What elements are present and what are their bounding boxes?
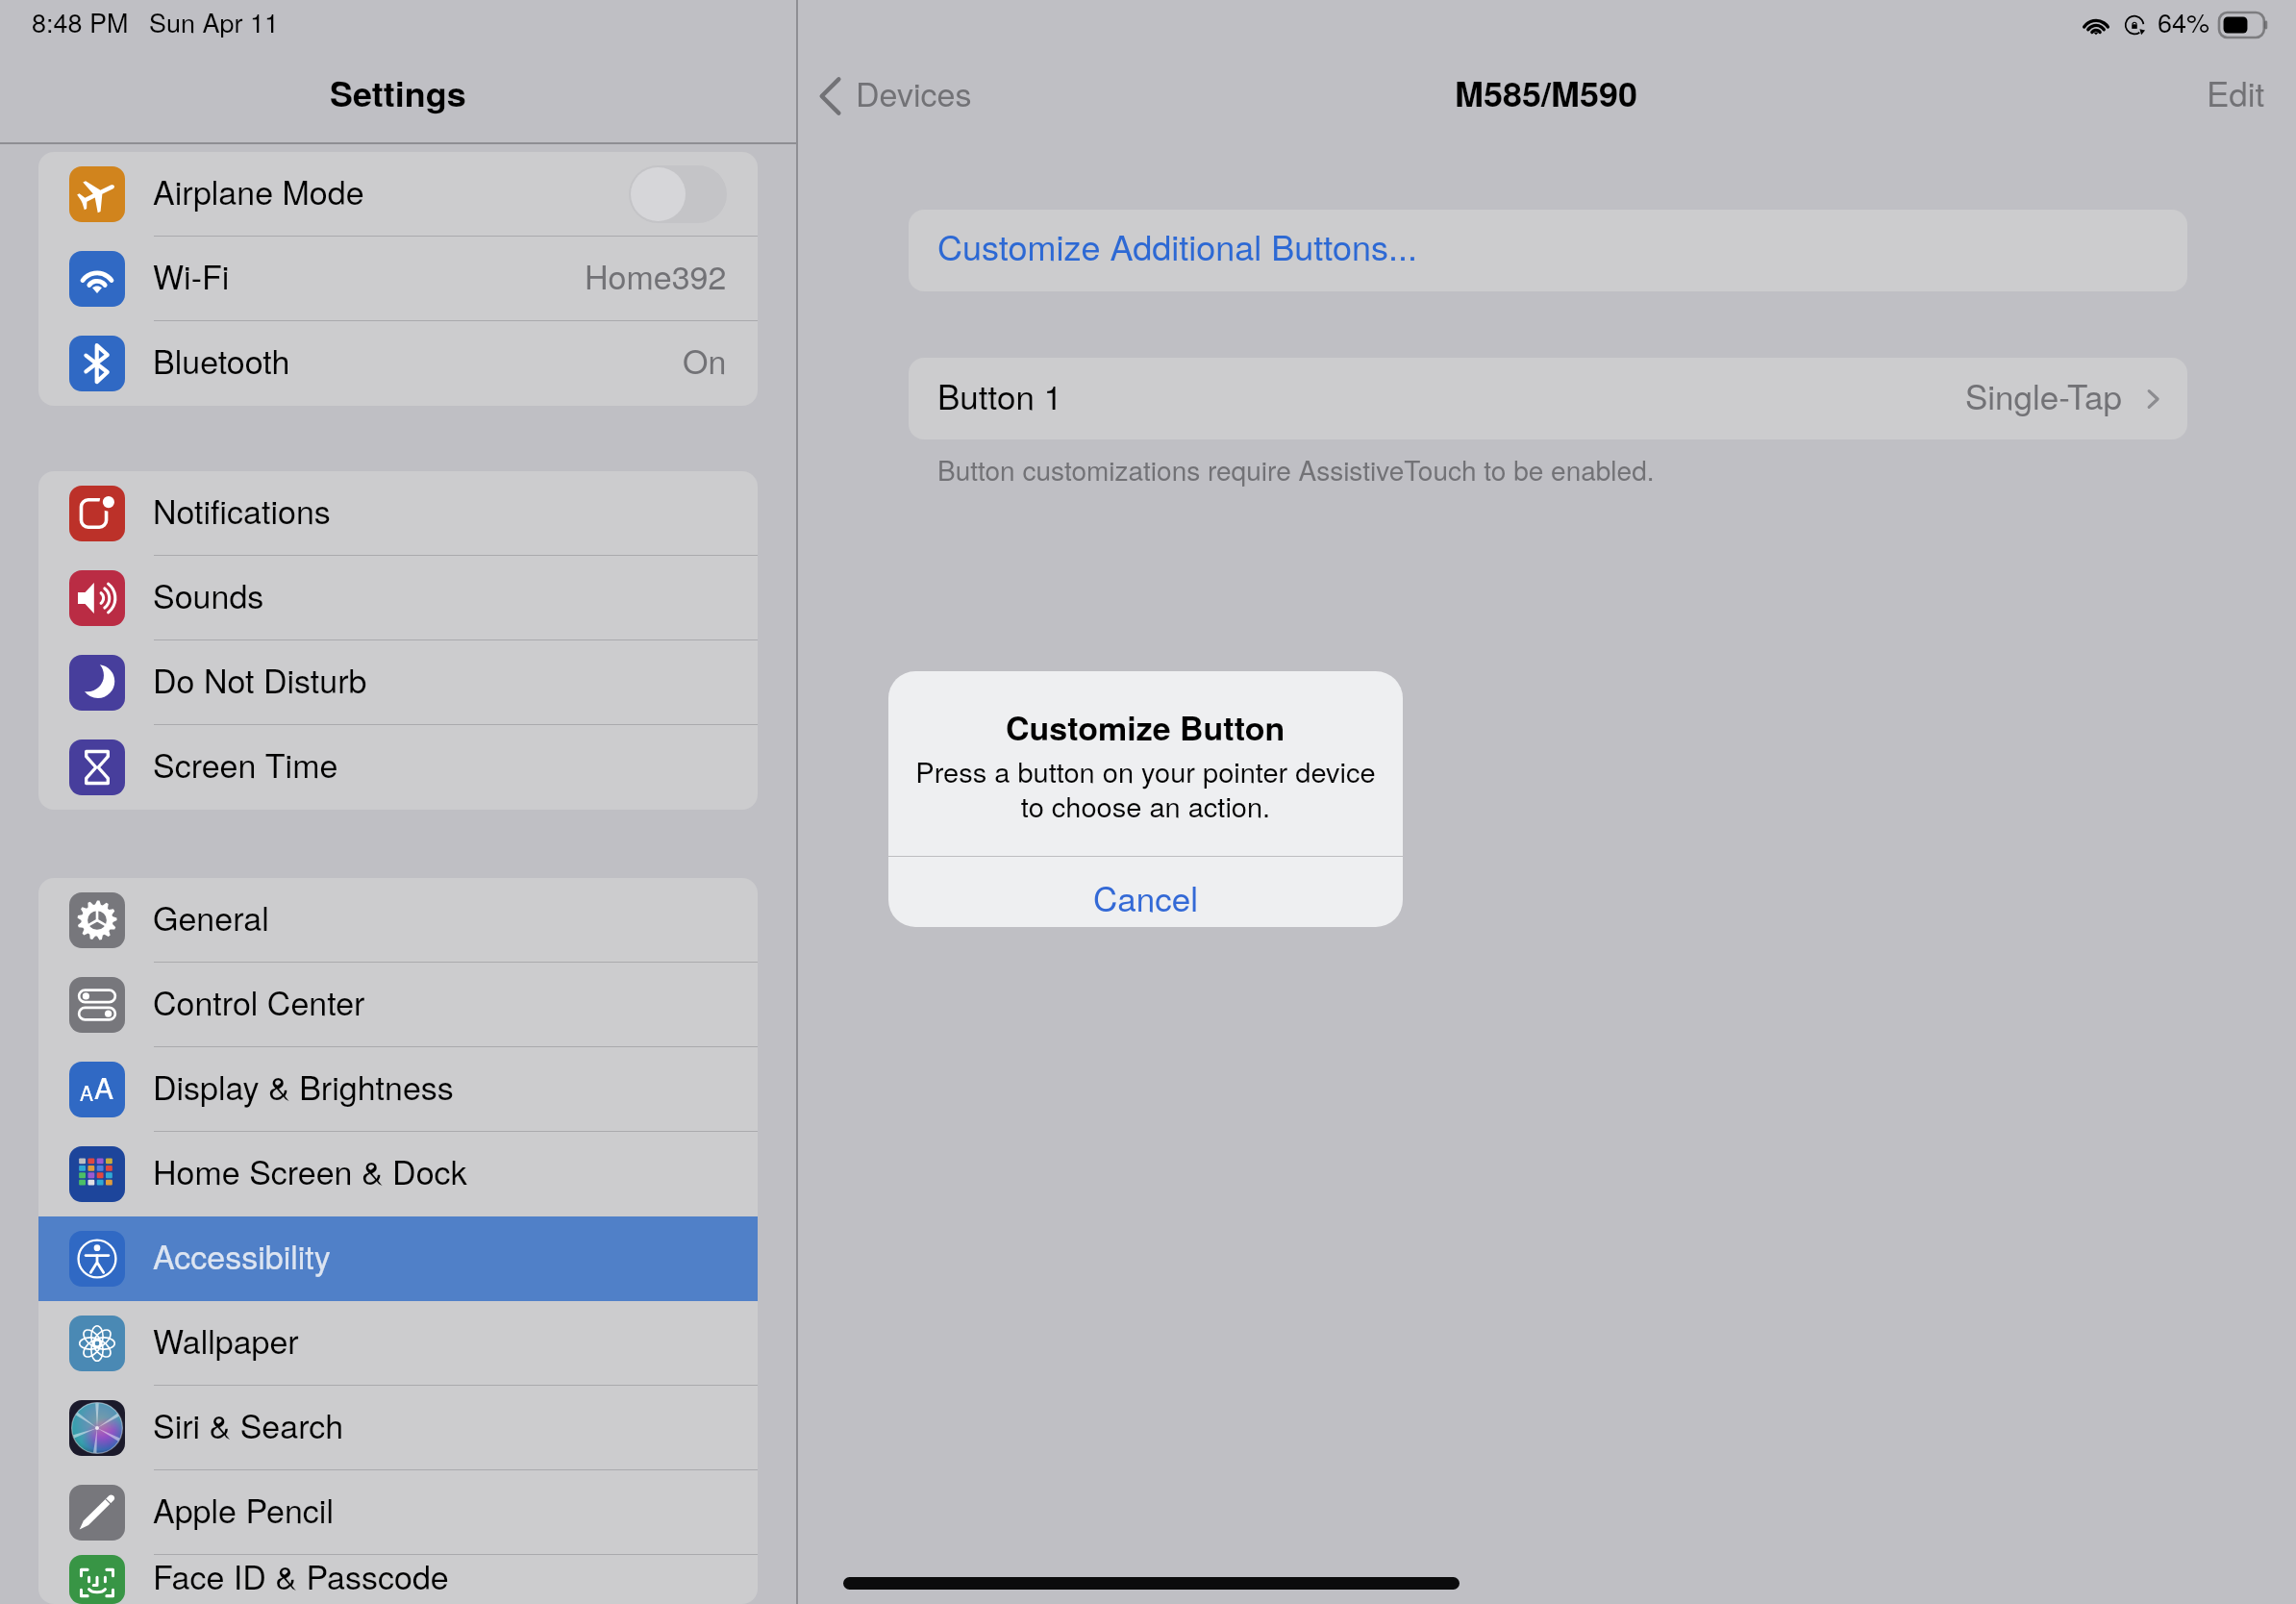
staticText: Face ID & Passcode <box>153 1563 449 1596</box>
staticText: Airplane Mode <box>153 178 364 212</box>
button[interactable]: Siri & Search <box>38 1386 758 1470</box>
button[interactable]: Cancel <box>888 857 1403 927</box>
staticText: Home Screen & Dock <box>153 1158 467 1191</box>
staticText: A <box>80 1085 94 1105</box>
button[interactable]: Airplane Mode <box>38 152 758 237</box>
button[interactable]: Button 1 <box>909 358 2187 439</box>
staticText: Screen Time <box>153 751 338 785</box>
staticText: Display & Brightness <box>153 1073 454 1107</box>
button[interactable]: Wallpaper <box>38 1301 758 1386</box>
staticText: Devices <box>856 80 972 113</box>
button[interactable]: Home Screen & Dock <box>38 1132 758 1216</box>
staticText: Button 1 <box>937 382 1063 416</box>
staticText: Home392 <box>585 263 727 296</box>
staticText: Do Not Disturb <box>153 666 367 700</box>
button[interactable]: Wi-Fi <box>38 237 758 321</box>
button[interactable]: Notifications <box>38 471 758 556</box>
staticText: Siri & Search <box>153 1412 344 1445</box>
button[interactable]: Airplane Mode toggle, off <box>629 165 727 223</box>
staticText: Edit <box>2207 79 2265 113</box>
staticText: General <box>153 904 269 938</box>
button[interactable]: Apple Pencil <box>38 1470 758 1555</box>
button[interactable]: Accessibility <box>38 1216 758 1301</box>
staticText: 64% <box>2158 12 2210 38</box>
button[interactable]: Control Center <box>38 963 758 1047</box>
staticText: Notifications <box>153 497 331 531</box>
button[interactable]: General <box>38 878 758 963</box>
staticText: Customize Button <box>1006 714 1285 748</box>
staticText: Wi-Fi <box>153 263 230 296</box>
staticText: Button customizations require AssistiveT… <box>937 459 1655 487</box>
staticText: Control Center <box>153 989 365 1022</box>
button[interactable]: Face ID & Passcode <box>38 1555 758 1604</box>
other: Back to Devices <box>817 75 842 117</box>
staticText: 8:48 PM <box>32 12 129 38</box>
button[interactable]: Edit <box>2207 79 2265 113</box>
staticText: A <box>94 1075 114 1105</box>
button[interactable]: A <box>38 1047 758 1132</box>
staticText: Cancel <box>1093 884 1198 918</box>
staticText: Press a button on your pointer device to… <box>915 751 1376 825</box>
staticText: Sun Apr 11 <box>149 12 280 38</box>
staticText: Settings <box>330 79 466 114</box>
staticText: Customize Additional Buttons... <box>937 233 1417 268</box>
button[interactable]: Back to Devices <box>817 75 972 117</box>
staticText: Single-Tap <box>1965 382 2122 416</box>
staticText: Bluetooth <box>153 347 290 381</box>
staticText: Accessibility <box>153 1242 331 1276</box>
staticText: Apple Pencil <box>153 1496 334 1530</box>
button[interactable]: Bluetooth <box>38 321 758 406</box>
staticText: On <box>683 347 727 381</box>
button[interactable]: Customize Additional Buttons... <box>909 210 2187 291</box>
staticText: Wallpaper <box>153 1327 299 1361</box>
button[interactable]: Do Not Disturb <box>38 640 758 725</box>
button[interactable]: Screen Time <box>38 725 758 810</box>
button[interactable]: Sounds <box>38 556 758 640</box>
staticText: M585/M590 <box>1455 79 1638 114</box>
staticText: Sounds <box>153 582 264 615</box>
